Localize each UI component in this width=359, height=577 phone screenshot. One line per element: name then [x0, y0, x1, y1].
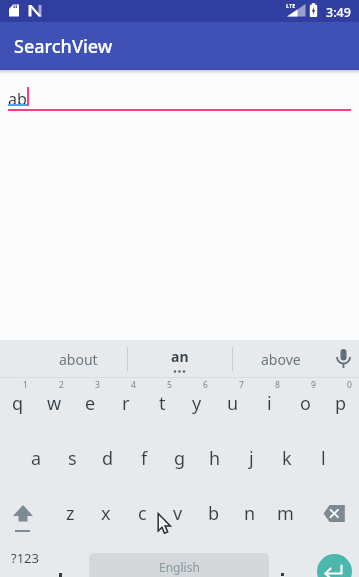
button[interactable] [0, 72, 359, 116]
button[interactable]: m [267, 488, 303, 538]
staticText: f [141, 446, 148, 471]
button[interactable]: e [72, 378, 108, 428]
button[interactable] [329, 344, 358, 374]
button[interactable]: o [287, 378, 323, 428]
staticText: i [267, 391, 272, 416]
button[interactable] [317, 554, 352, 577]
staticText: g [174, 446, 186, 471]
staticText: 9 [311, 379, 316, 391]
button[interactable]: t [144, 378, 180, 428]
staticText: n [244, 501, 256, 526]
button[interactable]: v [160, 488, 196, 538]
button[interactable]: l [305, 433, 341, 483]
button[interactable]: above [233, 341, 328, 377]
staticText: u [227, 391, 239, 416]
button[interactable]: about [28, 341, 128, 377]
button[interactable]: c [124, 488, 160, 538]
staticText: 4 [131, 379, 136, 391]
staticText: k [282, 446, 292, 471]
button[interactable]: n [232, 488, 268, 538]
staticText: 7 [239, 379, 244, 391]
staticText: 8 [275, 379, 280, 391]
staticText: 0 [347, 379, 352, 391]
staticText: s [68, 446, 77, 471]
staticText: d [102, 446, 114, 471]
staticText: above [261, 350, 301, 369]
staticText: y [192, 391, 202, 416]
button[interactable]: z [52, 488, 88, 538]
staticText: 3:49 [326, 4, 351, 21]
staticText: m [277, 501, 294, 526]
button[interactable]: y [179, 378, 215, 428]
staticText: l [321, 446, 326, 471]
button[interactable]: r [108, 378, 144, 428]
button[interactable]: a [18, 433, 54, 483]
button[interactable] [305, 487, 359, 539]
staticText: a [31, 446, 42, 471]
button[interactable] [0, 487, 54, 539]
staticText: o [300, 391, 311, 416]
button[interactable]: i [251, 378, 287, 428]
button[interactable]: f [126, 433, 162, 483]
button[interactable]: g [162, 433, 198, 483]
staticText: English [159, 559, 200, 575]
staticText: q [12, 391, 24, 416]
staticText: w [47, 391, 62, 416]
staticText: v [173, 501, 183, 526]
staticText: 6 [203, 379, 208, 391]
staticText: ?123 [11, 549, 39, 567]
button[interactable]: q [0, 378, 36, 428]
button[interactable]: k [269, 433, 305, 483]
button[interactable]: d [90, 433, 126, 483]
staticText: 1 [23, 379, 28, 391]
staticText: x [101, 501, 111, 526]
staticText: 5 [167, 379, 172, 391]
staticText: h [209, 446, 221, 471]
staticText: an [171, 347, 189, 366]
staticText: b [208, 501, 220, 526]
staticText: p [335, 391, 347, 416]
button[interactable]: English [89, 553, 269, 577]
staticText: 2 [59, 379, 64, 391]
button[interactable]: j [233, 433, 269, 483]
staticText: j [249, 446, 254, 471]
button[interactable]: b [196, 488, 232, 538]
button[interactable]: x [88, 488, 124, 538]
button[interactable]: s [54, 433, 90, 483]
button[interactable]: ?123 [0, 540, 50, 577]
button[interactable]: w [36, 378, 72, 428]
button[interactable]: p [323, 378, 359, 428]
staticText: 3 [95, 379, 100, 391]
staticText: about [59, 350, 98, 369]
staticText: SearchView [14, 34, 113, 59]
staticText: ab [8, 88, 27, 110]
staticText: LTE [286, 2, 296, 9]
button[interactable]: u [215, 378, 251, 428]
button[interactable]: h [197, 433, 233, 483]
staticText: t [159, 391, 166, 416]
staticText: z [66, 501, 75, 526]
button[interactable]: an [127, 341, 232, 377]
staticText: e [85, 391, 96, 416]
staticText: c [138, 501, 147, 526]
staticText: r [122, 391, 130, 416]
